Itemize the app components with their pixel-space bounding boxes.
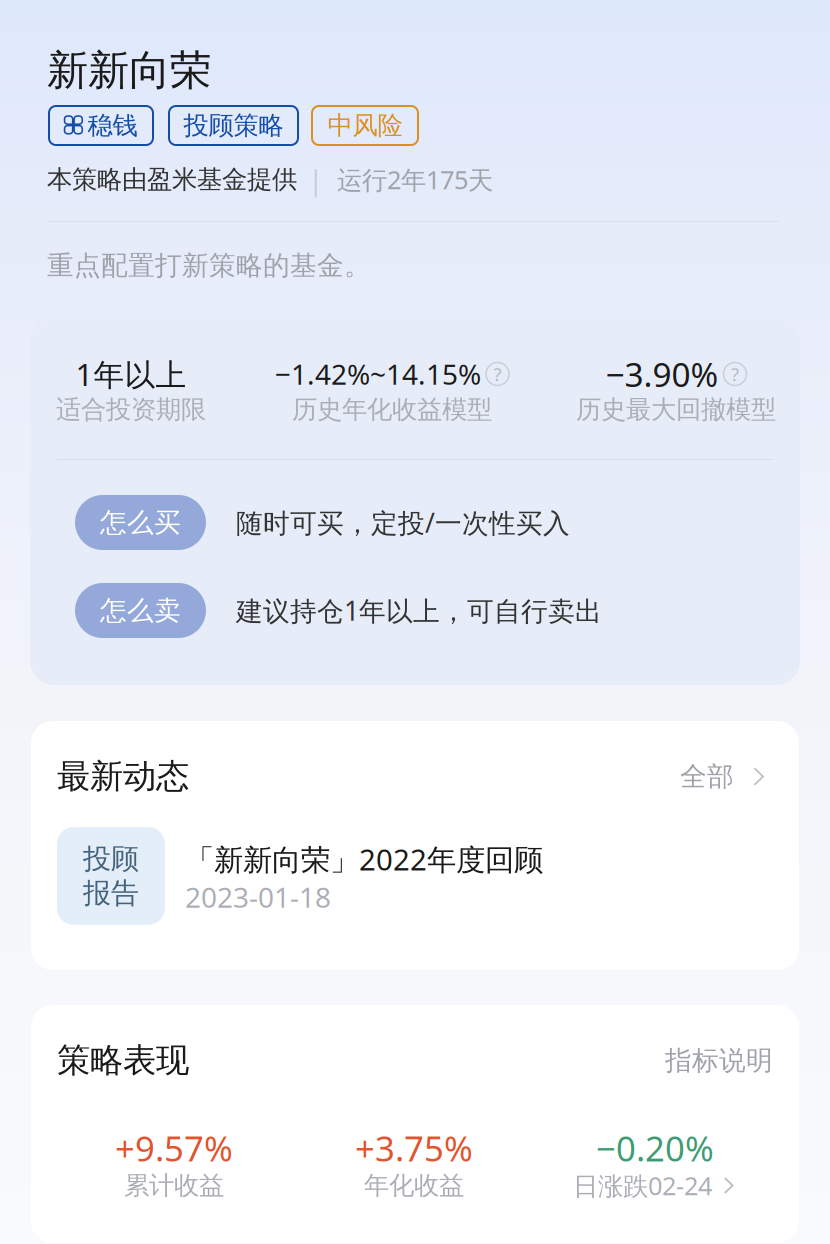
staticText: 投顾策略: [183, 110, 283, 141]
staticText: +3.75%: [355, 1125, 473, 1171]
button[interactable]: 中风险: [312, 106, 418, 145]
staticText: ?: [493, 362, 501, 386]
staticText: 怎么卖: [100, 594, 181, 627]
staticText: 累计收益: [124, 1170, 224, 1201]
staticText: 年化收益: [364, 1170, 464, 1201]
staticText: 随时可买，定投/一次性买入: [236, 505, 570, 540]
staticText: 日涨跌02-24: [573, 1169, 712, 1202]
staticText: 全部: [680, 760, 734, 793]
staticText: 最新动态: [57, 756, 189, 797]
staticText: 2023-01-18: [185, 878, 331, 916]
button[interactable]: 投顾 报告: [57, 827, 773, 925]
button[interactable]: 说明: [723, 362, 746, 385]
button[interactable]: 投顾策略: [169, 106, 298, 145]
staticText: 中风险: [327, 110, 402, 141]
staticText: −0.20%: [596, 1125, 714, 1171]
staticText: 怎么买: [100, 506, 181, 539]
staticText: 稳钱: [87, 110, 137, 141]
staticText: −1.42%~14.15%: [275, 355, 481, 393]
staticText: 适合投资期限: [56, 394, 206, 425]
staticText: 1年以上: [75, 354, 186, 394]
button[interactable]: 指标说明: [665, 1044, 773, 1077]
button[interactable]: 全部: [680, 760, 768, 793]
staticText: 建议持仓1年以上，可自行卖出: [236, 593, 602, 628]
button[interactable]: 说明: [486, 362, 509, 385]
button[interactable]: 稳钱: [49, 106, 153, 145]
staticText: 投顾 报告: [83, 842, 139, 910]
staticText: 指标说明: [665, 1044, 773, 1077]
staticText: 本策略由盈米基金提供: [47, 164, 297, 195]
staticText: 历史年化收益模型: [292, 394, 492, 425]
staticText: ?: [731, 362, 739, 386]
staticText: 运行2年175天: [337, 163, 493, 196]
staticText: +9.57%: [115, 1125, 233, 1171]
staticText: 策略表现: [57, 1040, 189, 1081]
staticText: 新新向荣: [47, 45, 211, 96]
staticText: 历史最大回撤模型: [576, 394, 776, 425]
staticText: 重点配置打新策略的基金。: [47, 249, 371, 282]
staticText: |: [308, 161, 323, 198]
staticText: −3.90%: [605, 352, 718, 396]
staticText: 「新新向荣」2022年度回顾: [185, 839, 543, 878]
